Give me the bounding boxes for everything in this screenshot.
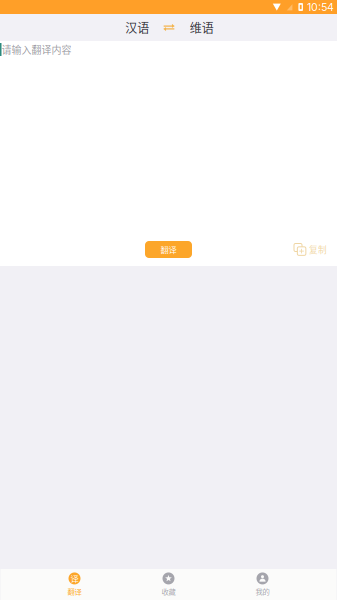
button[interactable]: 复制 — [294, 243, 327, 256]
button[interactable]: 我的 — [215, 569, 309, 600]
staticText: 复制 — [309, 243, 327, 256]
staticText: 翻译 — [160, 243, 176, 255]
button[interactable]: 翻译 — [145, 241, 192, 258]
staticText: 请输入翻译内容 — [1, 42, 71, 57]
staticText: 汉语 — [125, 19, 149, 36]
button[interactable]: 维语 — [187, 16, 217, 39]
button[interactable]: 译 — [27, 569, 121, 600]
staticText: 翻译 — [67, 586, 81, 596]
staticText: 10:54 — [307, 0, 334, 13]
button[interactable]: Swap languages — [160, 21, 178, 34]
staticText: 译 — [70, 572, 78, 584]
staticText: 我的 — [255, 586, 269, 596]
staticText: 收藏 — [161, 586, 175, 596]
button[interactable]: 汉语 — [122, 16, 152, 39]
staticText: 维语 — [190, 19, 214, 36]
button[interactable]: 收藏 — [121, 569, 215, 600]
